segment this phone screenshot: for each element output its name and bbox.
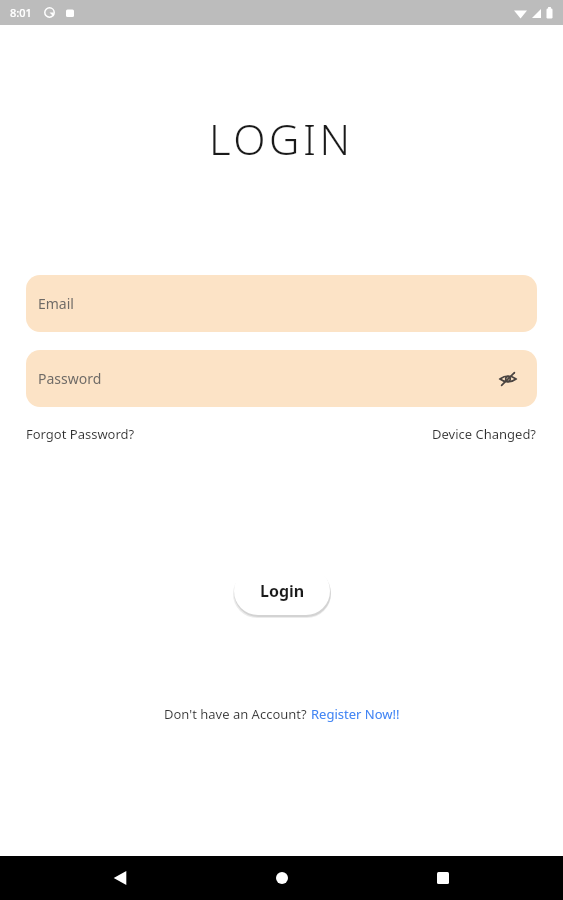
staticText: Login [260, 580, 305, 602]
button[interactable]: Email [26, 275, 537, 332]
button[interactable]: Recent apps [423, 858, 463, 898]
staticText: LOGIN [209, 110, 354, 167]
button[interactable]: Register Now!! [311, 705, 400, 723]
button[interactable]: Toggle password visibility [493, 364, 523, 394]
staticText: Don't have an Account? [164, 705, 311, 723]
button[interactable]: Home [262, 858, 302, 898]
staticText: Email [38, 294, 74, 313]
staticText: Register Now!! [311, 705, 400, 723]
staticText: Forgot Password? [26, 425, 135, 443]
button[interactable]: Password [26, 350, 537, 407]
button[interactable]: Back [100, 858, 140, 898]
button[interactable]: Device Changed? [432, 421, 537, 447]
button[interactable]: Login [234, 567, 330, 615]
button[interactable]: Forgot Password? [26, 421, 135, 447]
staticText: Password [38, 369, 102, 388]
staticText: 8:01 [10, 5, 32, 20]
staticText: Device Changed? [432, 425, 537, 443]
